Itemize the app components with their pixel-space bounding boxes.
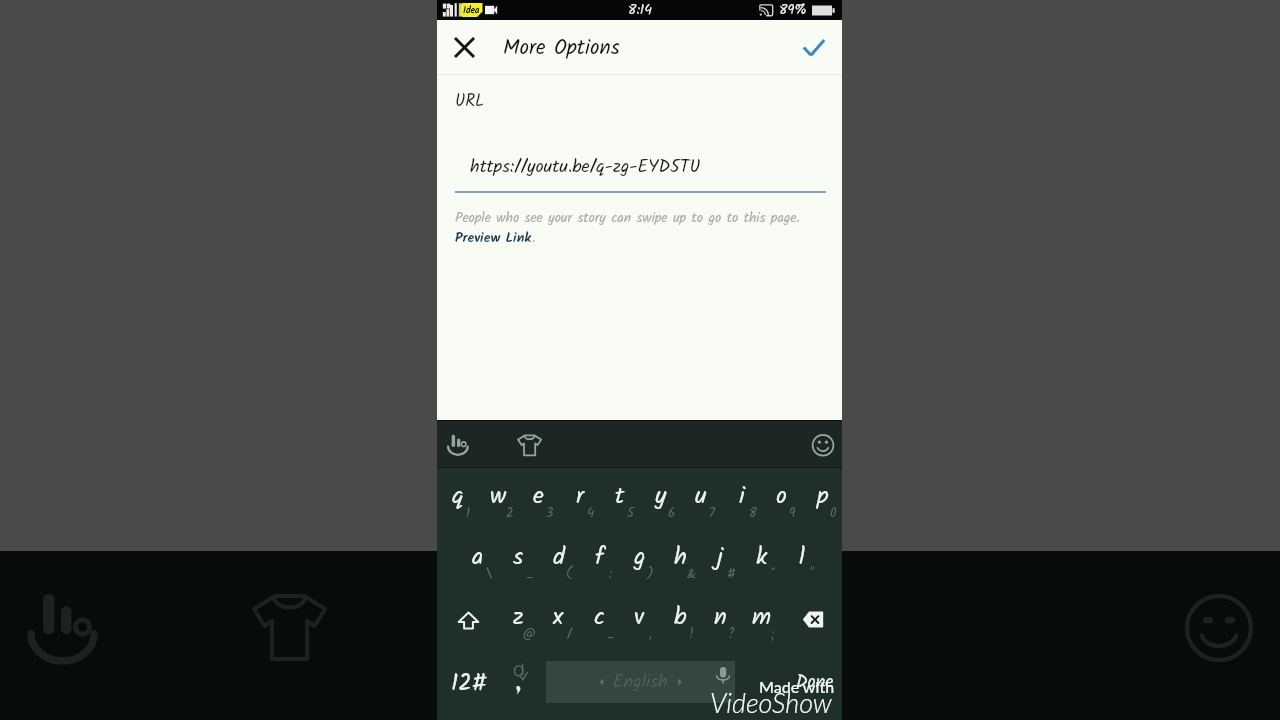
staticText: 8	[749, 503, 757, 524]
staticText: 8:14	[628, 0, 652, 19]
staticText: 5	[627, 503, 634, 524]
staticText: s	[513, 538, 524, 576]
staticText: #	[727, 564, 736, 585]
staticText: h	[674, 538, 687, 576]
button[interactable]: q	[437, 476, 478, 534]
staticText: a	[472, 538, 484, 576]
button[interactable]: t	[599, 476, 640, 534]
staticText: /	[567, 624, 572, 645]
button[interactable]: Shift	[448, 597, 489, 652]
button[interactable]: m	[741, 597, 782, 655]
button[interactable]: o	[761, 476, 802, 534]
staticText: 7	[709, 503, 715, 524]
staticText: Made with	[759, 677, 835, 696]
staticText: English	[613, 668, 668, 697]
staticText: "	[810, 564, 815, 585]
staticText: m	[752, 598, 772, 636]
staticText: ;	[771, 624, 775, 645]
button[interactable]: g	[619, 537, 660, 595]
staticText: .	[532, 227, 536, 249]
staticText: w	[490, 477, 507, 515]
staticText: j	[717, 538, 724, 576]
button[interactable]: p	[802, 476, 843, 534]
button[interactable]: Symbols	[499, 657, 541, 712]
button[interactable]: Close	[436, 20, 492, 74]
button[interactable]: n	[700, 597, 741, 655]
button[interactable]: Done	[786, 20, 842, 74]
staticText: q	[452, 477, 464, 515]
button[interactable]: r	[559, 476, 600, 534]
button[interactable]: Emoji	[804, 425, 842, 463]
staticText: 2	[506, 503, 514, 524]
staticText: d	[553, 538, 565, 576]
button[interactable]: h	[660, 537, 701, 595]
button[interactable]: i	[721, 476, 762, 534]
staticText: Idea	[463, 3, 480, 17]
staticText: VideoShow	[710, 686, 832, 718]
button[interactable]: e	[518, 476, 559, 534]
staticText: r	[576, 477, 584, 515]
button[interactable]: Stickers	[510, 425, 550, 465]
staticText: t	[615, 477, 625, 515]
button[interactable]: Space	[546, 661, 735, 703]
button[interactable]: z	[498, 597, 539, 655]
button[interactable]: c	[579, 597, 620, 655]
staticText: \	[485, 564, 493, 585]
staticText: n	[714, 598, 727, 636]
staticText: More Options	[503, 32, 620, 65]
button[interactable]: j	[700, 537, 741, 595]
staticText: 9	[789, 503, 796, 524]
staticText: _	[607, 624, 615, 645]
staticText: 89%	[779, 0, 807, 19]
staticText: l	[799, 538, 805, 576]
button[interactable]: y	[640, 476, 681, 534]
staticText: &	[687, 564, 697, 585]
staticText: ,	[649, 624, 652, 645]
staticText: 12#	[451, 666, 487, 703]
staticText: @	[523, 624, 536, 645]
button[interactable]: d	[538, 537, 579, 595]
button[interactable]: x	[538, 597, 579, 655]
button[interactable]: 12#	[445, 657, 493, 712]
staticText: k	[756, 538, 768, 576]
staticText: (	[566, 564, 573, 585]
staticText: f	[595, 538, 605, 576]
staticText: Done	[796, 668, 834, 697]
staticText: 0	[830, 503, 837, 524]
staticText: e	[533, 477, 544, 515]
button[interactable]: s	[498, 537, 539, 595]
staticText: z	[513, 598, 524, 636]
staticText: :	[609, 564, 613, 585]
staticText: p	[817, 477, 829, 515]
button[interactable]: u	[680, 476, 721, 534]
button[interactable]: w	[478, 476, 519, 534]
staticText: i	[739, 477, 745, 515]
staticText: c	[594, 598, 605, 636]
button[interactable]: f	[579, 537, 620, 595]
staticText: b	[674, 598, 687, 636]
staticText: People who see your story can swipe up t…	[455, 207, 800, 229]
button[interactable]: Preview Link	[455, 227, 532, 249]
button[interactable]: Keyboard settings	[439, 425, 479, 465]
staticText: y	[655, 477, 667, 515]
staticText: !	[689, 624, 694, 645]
button[interactable]: Done	[787, 657, 842, 712]
staticText: g	[634, 538, 646, 576]
button[interactable]: b	[660, 597, 701, 655]
button[interactable]: v	[619, 597, 660, 655]
button[interactable]: l	[781, 537, 822, 595]
staticText: v	[634, 598, 645, 636]
button[interactable]: a	[457, 537, 498, 595]
staticText: 4	[587, 503, 595, 524]
staticText: URL	[455, 88, 485, 115]
staticText: o	[776, 477, 787, 515]
staticText: 1	[466, 503, 471, 524]
button[interactable]: Backspace	[792, 597, 834, 652]
staticText: 3	[546, 503, 554, 524]
staticText: )	[647, 564, 654, 585]
button[interactable]: k	[741, 537, 782, 595]
staticText: u	[695, 477, 707, 515]
staticText: x	[553, 598, 564, 636]
staticText: ?	[728, 624, 735, 645]
staticText: _	[526, 564, 534, 585]
